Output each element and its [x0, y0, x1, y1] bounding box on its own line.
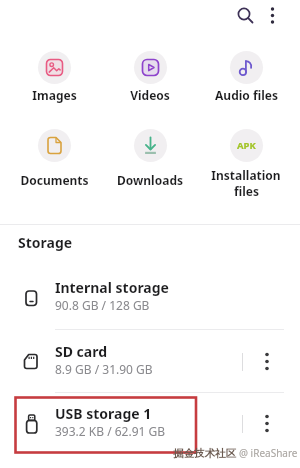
button[interactable]: Images	[6, 51, 102, 103]
staticText: Installation	[211, 167, 281, 183]
button[interactable]: USB storage 1	[0, 398, 300, 449]
staticText: Storage	[18, 233, 73, 252]
staticText: Videos	[130, 87, 170, 103]
staticText: @ iReaShare	[239, 446, 298, 460]
staticText: SD card	[55, 342, 108, 361]
button[interactable]	[253, 347, 281, 376]
button[interactable]: APK	[198, 129, 294, 199]
button[interactable]	[259, 1, 287, 29]
staticText: Downloads	[117, 172, 183, 188]
staticText: 393.2 KB / 62.91 GB	[55, 423, 166, 439]
staticText: Documents	[20, 172, 89, 188]
staticText: files	[234, 183, 259, 199]
button[interactable]: SD card	[0, 336, 300, 387]
staticText: Audio files	[215, 87, 278, 103]
button[interactable]: Downloads	[102, 129, 198, 188]
button[interactable]: Audio files	[198, 51, 294, 103]
staticText: Internal storage	[55, 278, 169, 297]
button[interactable]: Internal storage	[0, 272, 300, 323]
button[interactable]: Documents	[6, 129, 102, 188]
button[interactable]	[253, 409, 281, 438]
staticText: APK	[237, 139, 256, 152]
staticText: USB storage 1	[55, 404, 152, 423]
staticText: 90.8 GB / 128 GB	[55, 297, 150, 313]
button[interactable]: Videos	[102, 51, 198, 103]
button[interactable]	[231, 1, 259, 29]
staticText: 8.9 GB / 31.90 GB	[55, 361, 153, 377]
staticText: 掘金技术社区	[173, 447, 236, 460]
staticText: Images	[32, 87, 77, 103]
